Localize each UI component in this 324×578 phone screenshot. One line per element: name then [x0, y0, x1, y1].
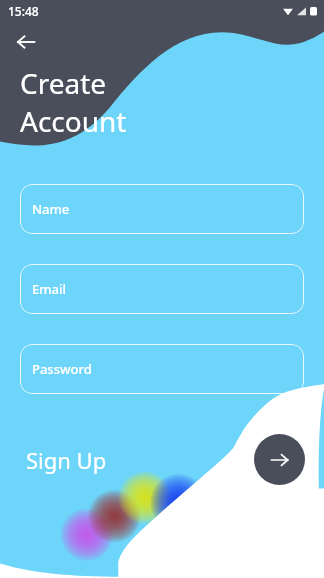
staticText: Name [32, 200, 70, 218]
button[interactable]: Continue [254, 434, 305, 485]
button[interactable]: Back [10, 26, 42, 58]
button[interactable]: Email [20, 264, 304, 314]
staticText: Email [32, 280, 67, 298]
button[interactable]: Name [20, 184, 304, 234]
staticText: 15:48 [8, 3, 39, 19]
button[interactable]: Password [20, 344, 304, 394]
staticText: Create Account [20, 64, 127, 140]
staticText: Password [32, 360, 92, 378]
button[interactable]: Sign Up [26, 445, 107, 475]
